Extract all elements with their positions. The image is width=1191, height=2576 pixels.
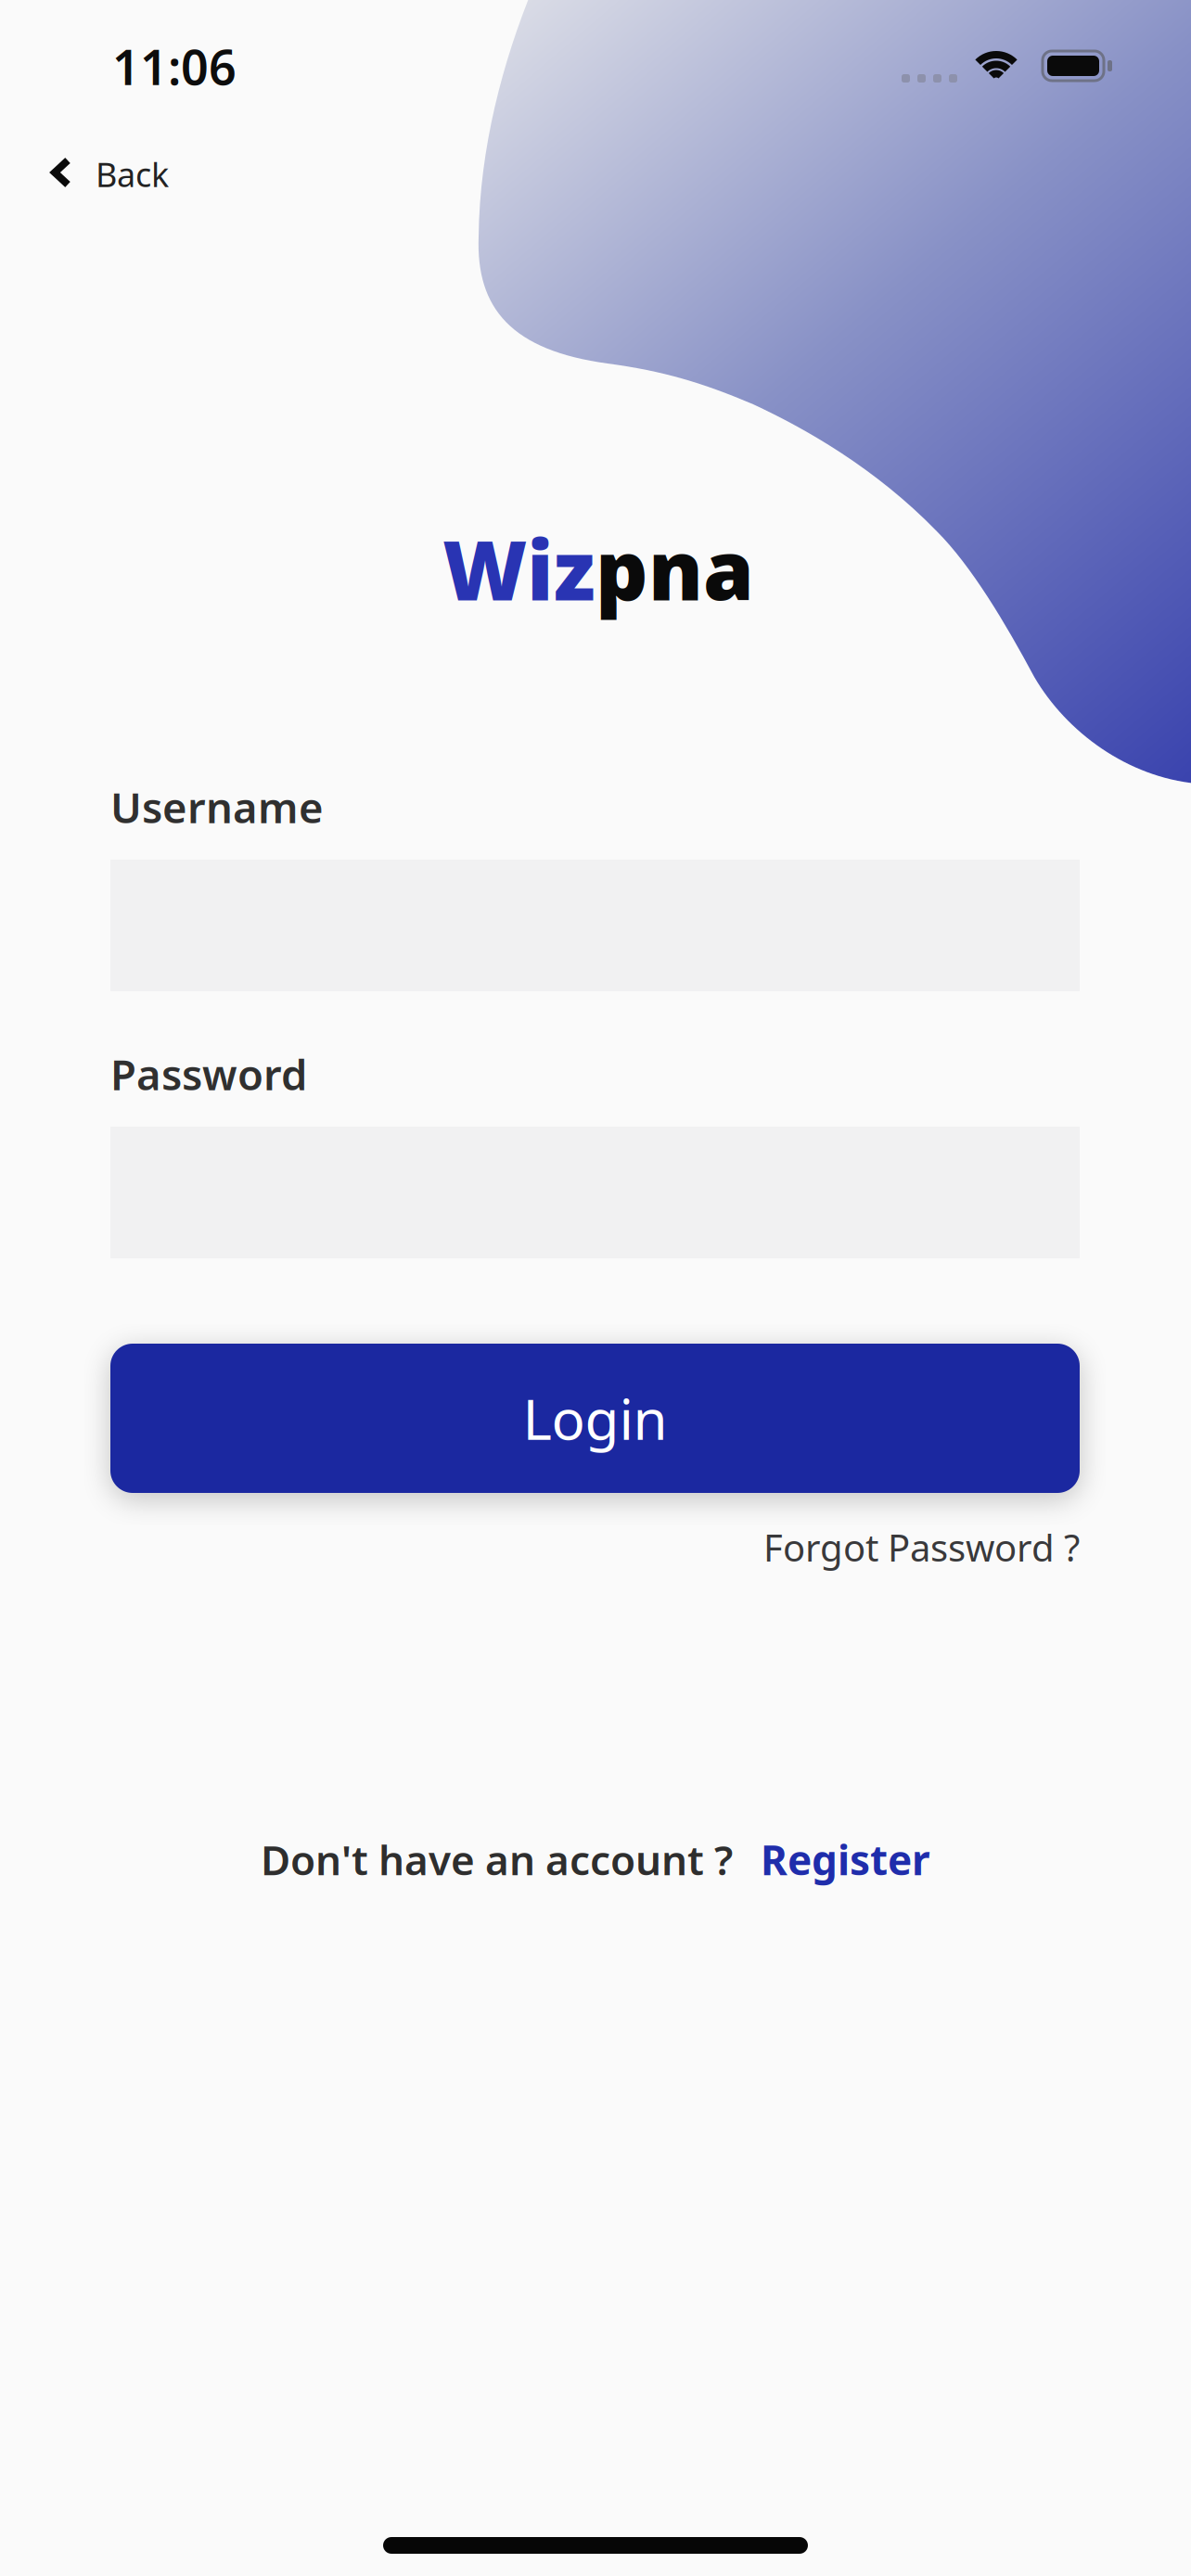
button[interactable]: Register	[761, 1832, 930, 1886]
staticText: Register	[761, 1832, 930, 1886]
button[interactable]: Back	[49, 152, 174, 195]
staticText: pna	[595, 515, 754, 623]
staticText: 11:06	[112, 34, 237, 98]
staticText: Password	[110, 1046, 307, 1102]
staticText: Wiz	[442, 515, 595, 623]
staticText: Forgot Password ?	[763, 1523, 1080, 1572]
staticText: Username	[110, 779, 324, 835]
staticText: Don't have an account ?	[261, 1832, 733, 1886]
button[interactable]: Login	[110, 1344, 1080, 1493]
button[interactable]: Forgot Password ?	[763, 1523, 1080, 1572]
staticText: Login	[523, 1381, 667, 1455]
staticText: Back	[96, 152, 169, 196]
